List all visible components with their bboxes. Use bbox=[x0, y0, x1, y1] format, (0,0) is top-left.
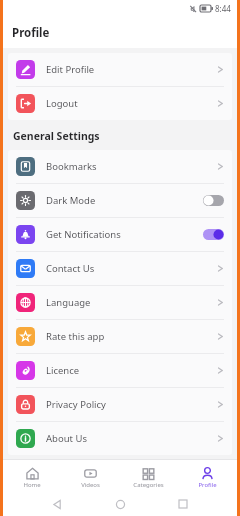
button[interactable]: Back bbox=[48, 495, 66, 513]
staticText: Videos bbox=[81, 481, 100, 489]
button[interactable]: Get Notifications toggle, on bbox=[203, 229, 224, 240]
button[interactable]: Get Notifications bbox=[8, 218, 232, 251]
staticText: General Settings bbox=[13, 129, 100, 143]
staticText: Rate this app bbox=[46, 330, 105, 343]
staticText: Language bbox=[46, 296, 91, 309]
staticText: 8:44 bbox=[215, 3, 231, 14]
button[interactable]: Contact Us bbox=[8, 252, 232, 285]
button[interactable]: About Us bbox=[8, 422, 232, 455]
staticText: Profile bbox=[12, 25, 50, 41]
button[interactable]: Dark Mode bbox=[8, 184, 232, 217]
staticText: Edit Profile bbox=[46, 63, 95, 76]
staticText: Dark Mode bbox=[46, 194, 96, 207]
staticText: Logout bbox=[46, 97, 78, 110]
staticText: Get Notifications bbox=[46, 228, 121, 241]
staticText: About Us bbox=[46, 432, 87, 445]
staticText: Home bbox=[23, 481, 41, 489]
button[interactable]: Rate this app bbox=[8, 320, 232, 353]
button[interactable]: Privacy Policy bbox=[8, 388, 232, 421]
staticText: Contact Us bbox=[46, 262, 95, 275]
button[interactable]: Categories bbox=[119, 464, 178, 489]
staticText: Profile bbox=[198, 481, 217, 489]
staticText: Privacy Policy bbox=[46, 398, 106, 411]
button[interactable]: Logout bbox=[8, 87, 232, 120]
button[interactable]: Videos bbox=[61, 464, 119, 489]
button[interactable]: Recent apps bbox=[174, 495, 192, 513]
button[interactable]: Bookmarks bbox=[8, 150, 232, 183]
staticText: Bookmarks bbox=[46, 160, 97, 173]
staticText: Categories bbox=[133, 481, 164, 489]
staticText: Licence bbox=[46, 364, 80, 377]
button[interactable]: Language bbox=[8, 286, 232, 319]
button[interactable]: Home bbox=[111, 495, 129, 513]
button[interactable]: Profile bbox=[178, 464, 237, 489]
button[interactable]: Licence bbox=[8, 354, 232, 387]
button[interactable]: Edit Profile bbox=[8, 53, 232, 86]
button[interactable]: Dark Mode toggle, off bbox=[203, 195, 224, 206]
button[interactable]: Home bbox=[3, 464, 61, 489]
